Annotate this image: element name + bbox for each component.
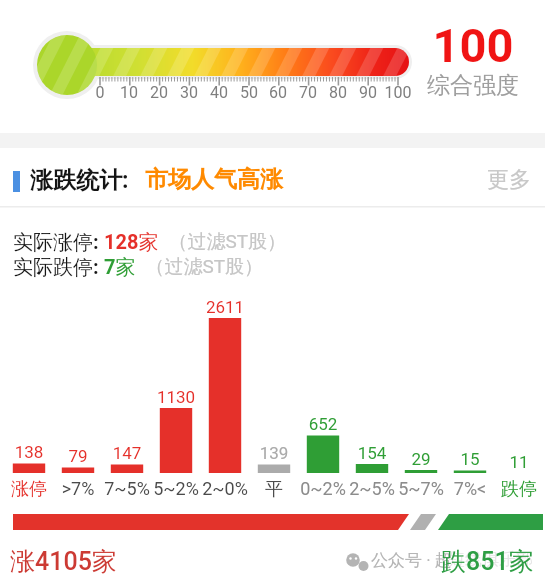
staticText: 实际跌停: [13,255,104,280]
staticText: 138 [5,442,53,462]
staticText: 0 [80,83,120,102]
staticText: 涨跌统计: [30,166,129,195]
staticText: 50 [229,83,269,102]
staticText: 5~2% [152,478,200,499]
button[interactable]: 涨跌统计: [30,166,129,195]
staticText: （过滤ST股） [159,230,287,254]
staticText: 29 [397,449,445,469]
staticText: 2~0% [201,478,249,499]
staticText: 154 [348,443,396,463]
staticText: 7~5% [103,478,151,499]
staticText: 11 [495,452,543,472]
staticText: 综合强度 [420,71,526,100]
staticText: 90 [348,83,388,102]
staticText: 涨4105家 [10,546,117,577]
staticText: 80 [318,83,358,102]
staticText: 7%< [446,478,494,499]
staticText: >7% [54,478,102,499]
staticText: 7家 [104,255,136,280]
staticText: 100 [378,83,418,102]
staticText: 公众号 · 超 [371,550,452,571]
staticText: 100 [420,18,526,73]
staticText: 139 [250,443,298,463]
staticText: 平 [250,478,298,501]
staticText: 40 [199,83,239,102]
staticText: 10 [109,83,149,102]
staticText: 147 [103,443,151,463]
staticText: 0~2% [299,478,347,499]
staticText: 30 [169,83,209,102]
staticText: 70 [288,83,328,102]
staticText: 市场人气高涨 [145,165,283,194]
staticText: 15 [446,449,494,469]
staticText: 更多 [487,166,531,194]
staticText: 652 [299,414,347,434]
staticText: 79 [54,446,102,466]
staticText: 跌851家 [441,546,534,577]
staticText: 128家 [104,230,159,255]
staticText: 1130 [152,387,200,407]
staticText: 20 [139,83,179,102]
staticText: 2~5% [348,478,396,499]
staticText: 2611 [201,297,249,317]
staticText: 5~7% [397,478,445,499]
staticText: 涨停 [5,478,53,501]
staticText: 跌停 [495,478,543,501]
button[interactable]: 更多 [487,166,531,194]
staticText: 短线俱乐部 [448,549,533,570]
staticText: 60 [258,83,298,102]
staticText: 实际涨停: [13,230,104,255]
staticText: （过滤ST股） [136,255,264,279]
